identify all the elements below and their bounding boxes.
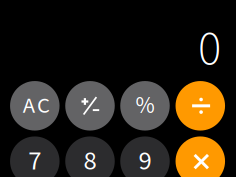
button[interactable]: Multiply	[176, 136, 225, 177]
button[interactable]: %	[120, 81, 170, 130]
button[interactable]: Divide	[176, 81, 225, 130]
staticText: 0	[198, 14, 221, 84]
staticText: 9	[138, 142, 151, 177]
staticText: C	[37, 90, 50, 122]
staticText: 8	[83, 142, 96, 177]
button[interactable]: 9	[120, 136, 170, 177]
button[interactable]: Plus minus	[65, 81, 115, 130]
staticText: 7	[28, 142, 41, 177]
button[interactable]: A	[10, 81, 59, 130]
staticText: A	[23, 90, 35, 122]
staticText: %	[135, 89, 154, 122]
button[interactable]: 7	[10, 136, 59, 177]
button[interactable]: 8	[65, 136, 115, 177]
